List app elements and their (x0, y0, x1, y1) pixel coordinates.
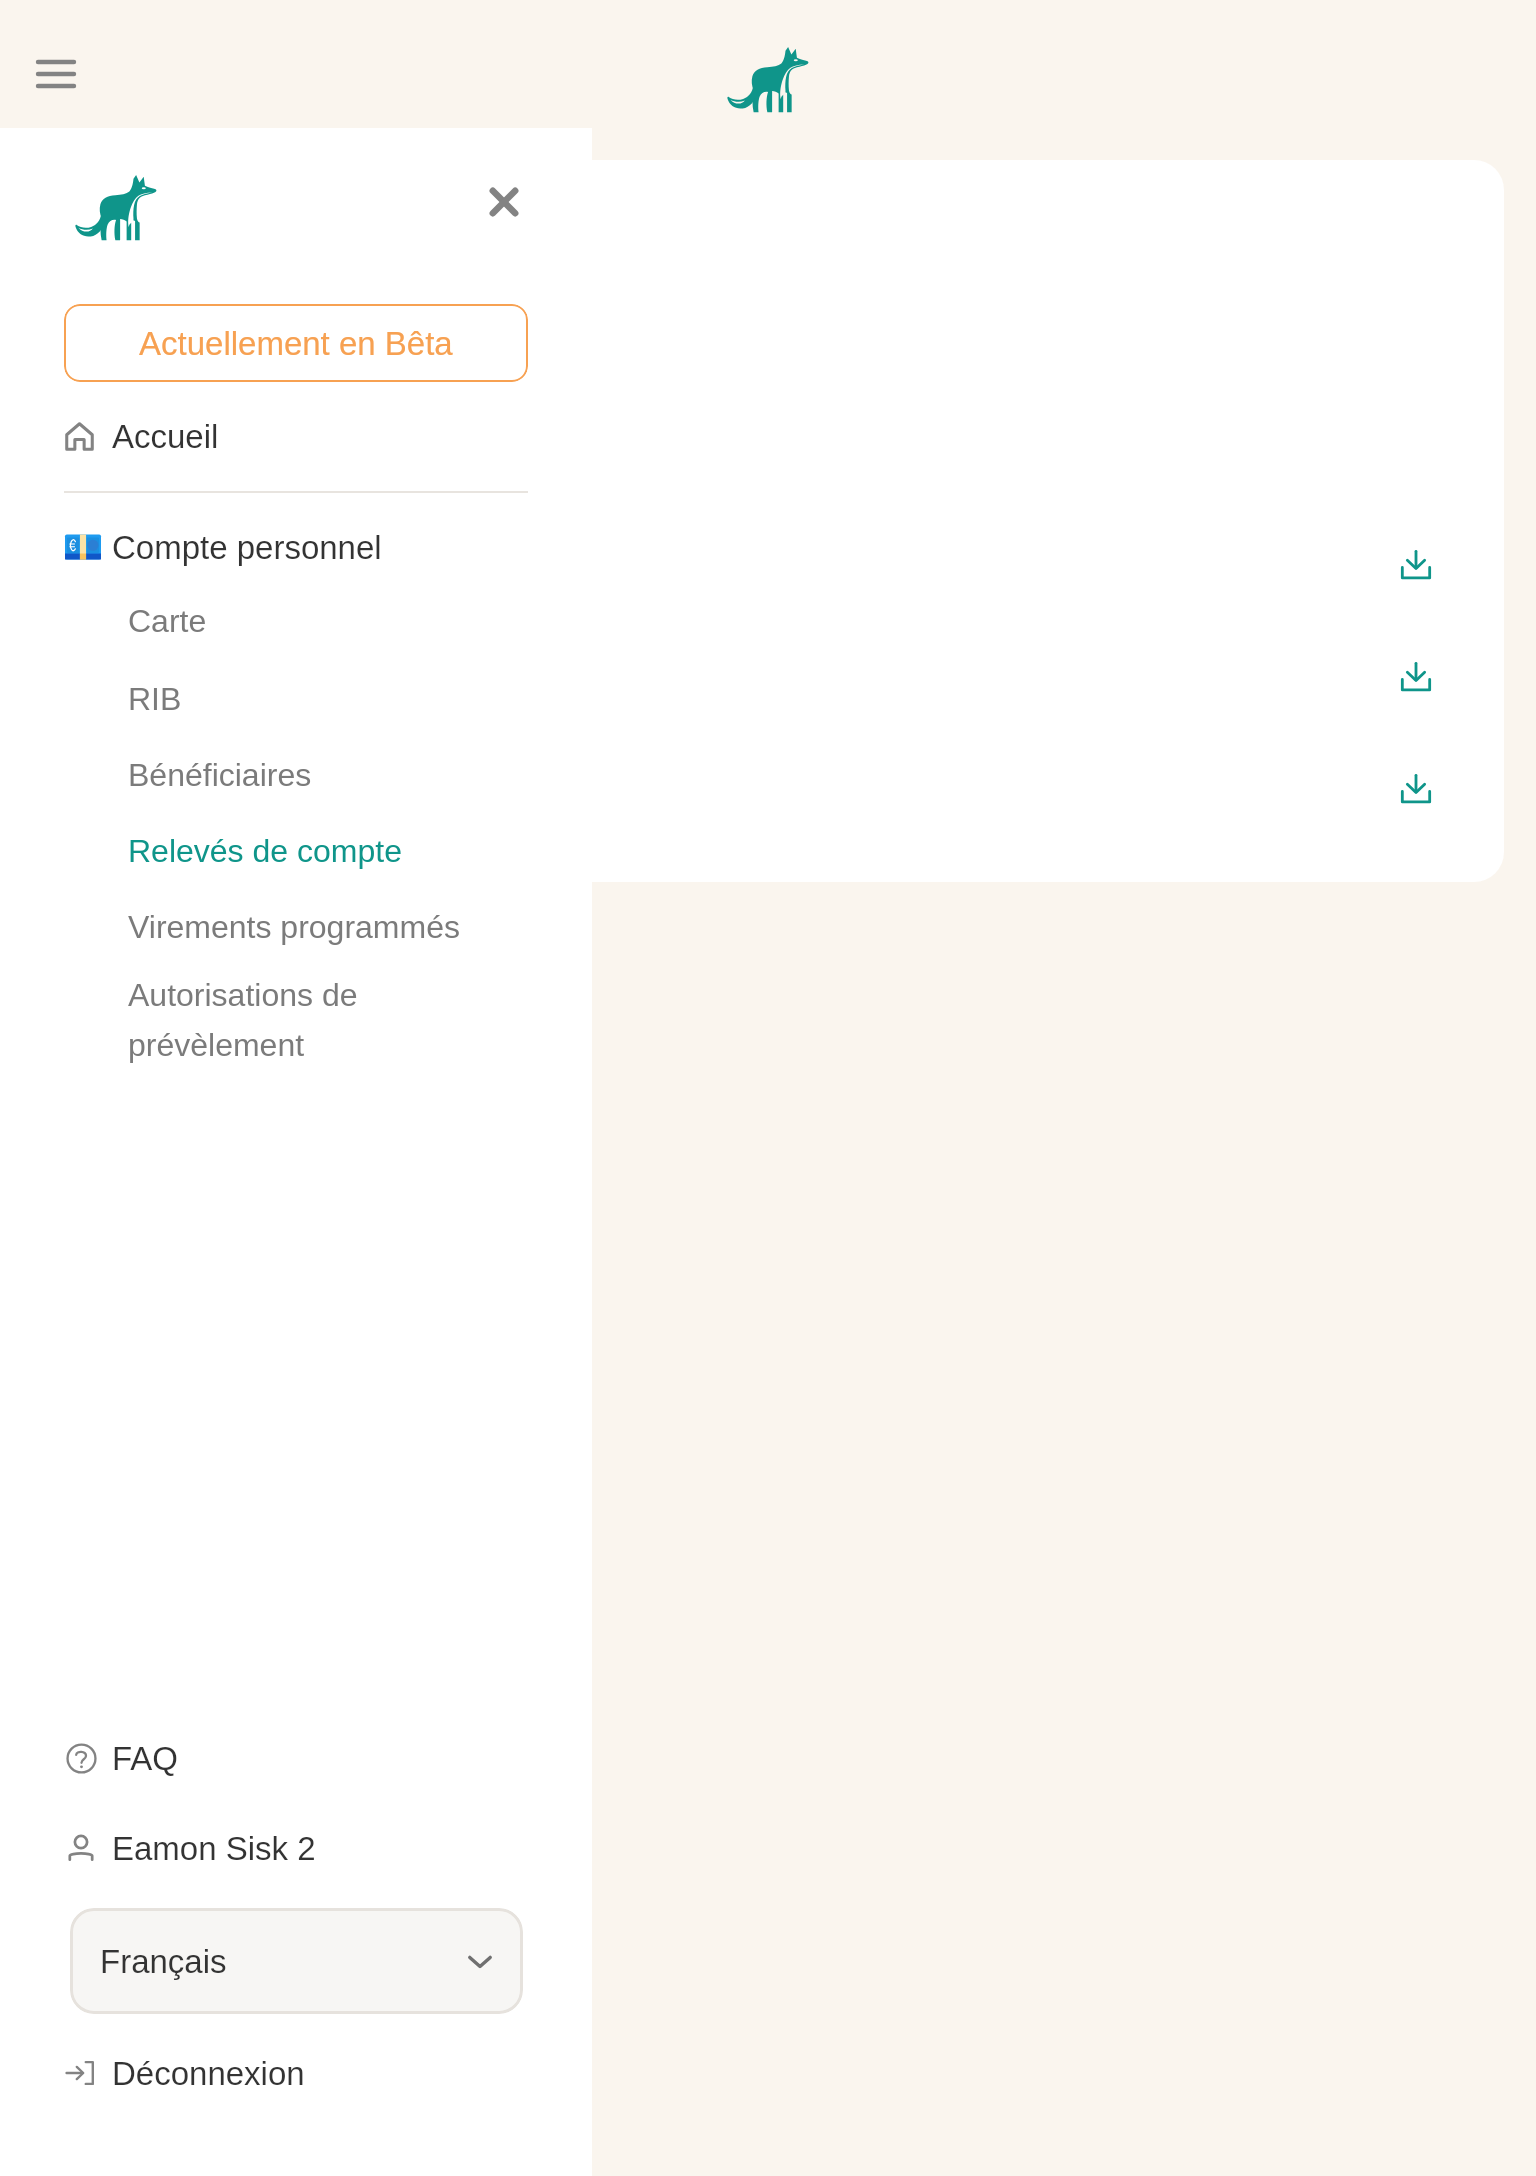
staticText: Carte (128, 603, 207, 639)
staticText: Français (100, 1943, 227, 1980)
button[interactable]: Menu (24, 44, 88, 104)
button[interactable]: FAQ (40, 1730, 528, 1786)
button[interactable]: Télécharger le relevé (1398, 547, 1434, 583)
staticText: RIB (128, 681, 182, 717)
staticText: FAQ (112, 1740, 179, 1777)
button[interactable]: Virements programmés (128, 901, 528, 953)
button[interactable]: Télécharger le relevé (1398, 659, 1434, 695)
button[interactable]: Relevés de compte (128, 825, 528, 877)
staticText: Eamon Sisk 2 (112, 1830, 316, 1867)
button[interactable]: Français (70, 1908, 523, 2014)
button[interactable]: Accueil (40, 408, 528, 464)
button[interactable]: Compte personnel (40, 519, 528, 575)
staticText: Relevés de compte (128, 833, 402, 869)
staticText: Virements programmés (128, 909, 460, 945)
button[interactable]: Carte (128, 595, 528, 647)
button[interactable]: Autorisations de prévèlement (128, 977, 428, 1081)
button[interactable]: Actuellement en Bêta (64, 304, 528, 382)
staticText: Actuellement en Bêta (139, 325, 453, 362)
staticText: Bénéficiaires (128, 757, 312, 793)
button[interactable]: Fermer le menu (484, 182, 524, 222)
button[interactable]: RIB (128, 673, 528, 725)
button[interactable]: Eamon Sisk 2 (40, 1820, 528, 1876)
button[interactable]: Bénéficiaires (128, 749, 528, 801)
button[interactable]: Télécharger le relevé (1398, 771, 1434, 807)
staticText: Autorisations de prévèlement (128, 977, 358, 1063)
button[interactable]: Déconnexion (40, 2045, 528, 2101)
staticText: Déconnexion (112, 2055, 305, 2092)
staticText: Accueil (112, 418, 219, 455)
staticText: Compte personnel (112, 529, 382, 566)
